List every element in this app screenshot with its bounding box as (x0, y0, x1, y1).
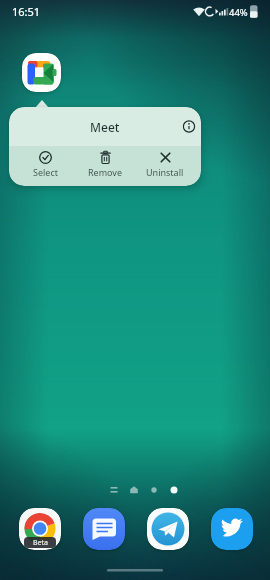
button[interactable]: Remove (75, 146, 135, 186)
button[interactable] (211, 508, 253, 550)
button[interactable] (19, 508, 61, 550)
staticText: Remove (88, 166, 123, 178)
button[interactable] (83, 508, 125, 550)
button[interactable]: Meet (9, 107, 201, 146)
staticText: Uninstall (146, 166, 184, 178)
staticText: Beta (33, 538, 48, 548)
staticText: Select (33, 166, 58, 178)
button[interactable] (147, 508, 189, 550)
button[interactable] (22, 53, 61, 92)
staticText: 16:51 (12, 4, 41, 19)
button[interactable]: Select (15, 146, 75, 186)
button[interactable]: Uninstall (135, 146, 195, 186)
staticText: Meet (90, 119, 120, 135)
staticText: 44% (229, 6, 248, 19)
